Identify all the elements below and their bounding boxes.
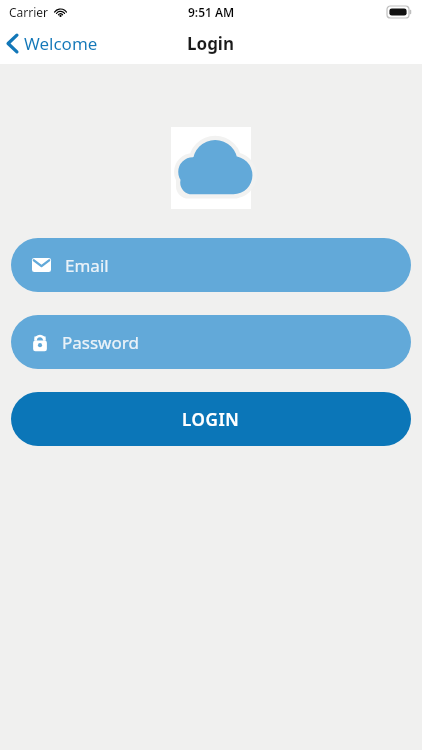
button[interactable]: Password [11, 315, 411, 369]
staticText: 9:51 AM [188, 4, 235, 20]
staticText: Password [62, 331, 139, 354]
button[interactable]: LOGIN [11, 392, 411, 446]
button[interactable]: Welcome [0, 28, 108, 59]
button[interactable]: Email [11, 238, 411, 292]
staticText: Welcome [24, 32, 98, 55]
staticText: Login [187, 32, 235, 55]
staticText: Email [65, 254, 109, 277]
staticText: LOGIN [182, 408, 240, 431]
staticText: Carrier [9, 4, 49, 20]
